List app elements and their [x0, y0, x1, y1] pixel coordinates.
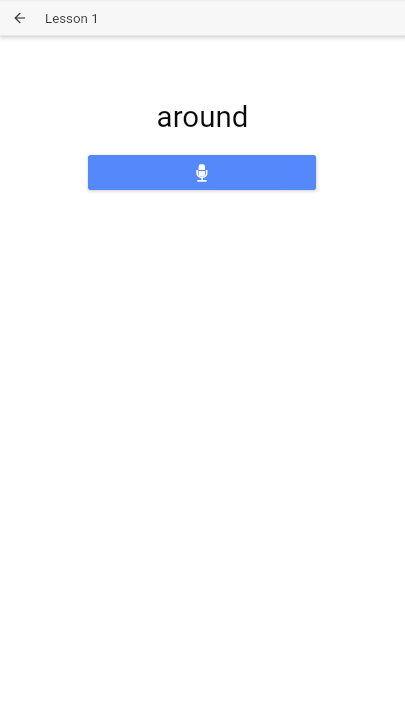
button[interactable]: Back — [0, 0, 40, 36]
staticText: Lesson 1 — [45, 11, 99, 27]
button[interactable]: Record pronunciation — [88, 155, 316, 190]
staticText: around — [0, 100, 405, 135]
